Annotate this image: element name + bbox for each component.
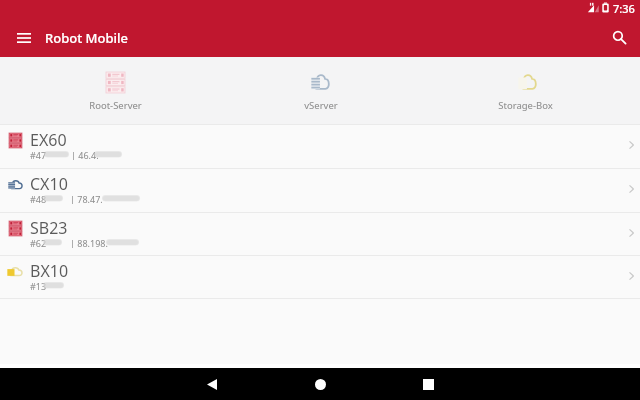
staticText: | 78.47. [70, 193, 103, 204]
staticText: #48 [30, 193, 47, 204]
staticText: #13 [30, 280, 47, 291]
staticText: Root-Server [89, 99, 142, 112]
button[interactable]: Root-Server [12, 57, 218, 112]
button[interactable]: CX10 [0, 169, 640, 212]
button[interactable]: EX60 [0, 125, 640, 168]
button[interactable]: Storage-Box [423, 57, 628, 112]
staticText: 7:36 [613, 1, 635, 16]
staticText: #47 [30, 149, 47, 160]
button[interactable]: Search [604, 20, 640, 57]
button[interactable]: vServer [218, 57, 423, 112]
staticText: #62 [30, 237, 47, 248]
button[interactable]: Recent apps [374, 368, 482, 400]
button[interactable]: SB23 [0, 213, 640, 255]
staticText: BX10 [30, 260, 69, 282]
staticText: CX10 [30, 173, 68, 195]
staticText: Storage-Box [498, 99, 553, 112]
button[interactable]: Back [158, 368, 266, 400]
staticText: Robot Mobile [45, 29, 128, 47]
staticText: SB23 [30, 217, 68, 239]
staticText: vServer [304, 99, 338, 112]
button[interactable]: Home [266, 368, 374, 400]
button[interactable]: Open navigation menu [0, 20, 44, 57]
staticText: | 46.4. [71, 149, 99, 160]
button[interactable]: BX10 [0, 256, 640, 298]
staticText: EX60 [30, 129, 67, 151]
staticText: | 88.198. [70, 237, 108, 248]
